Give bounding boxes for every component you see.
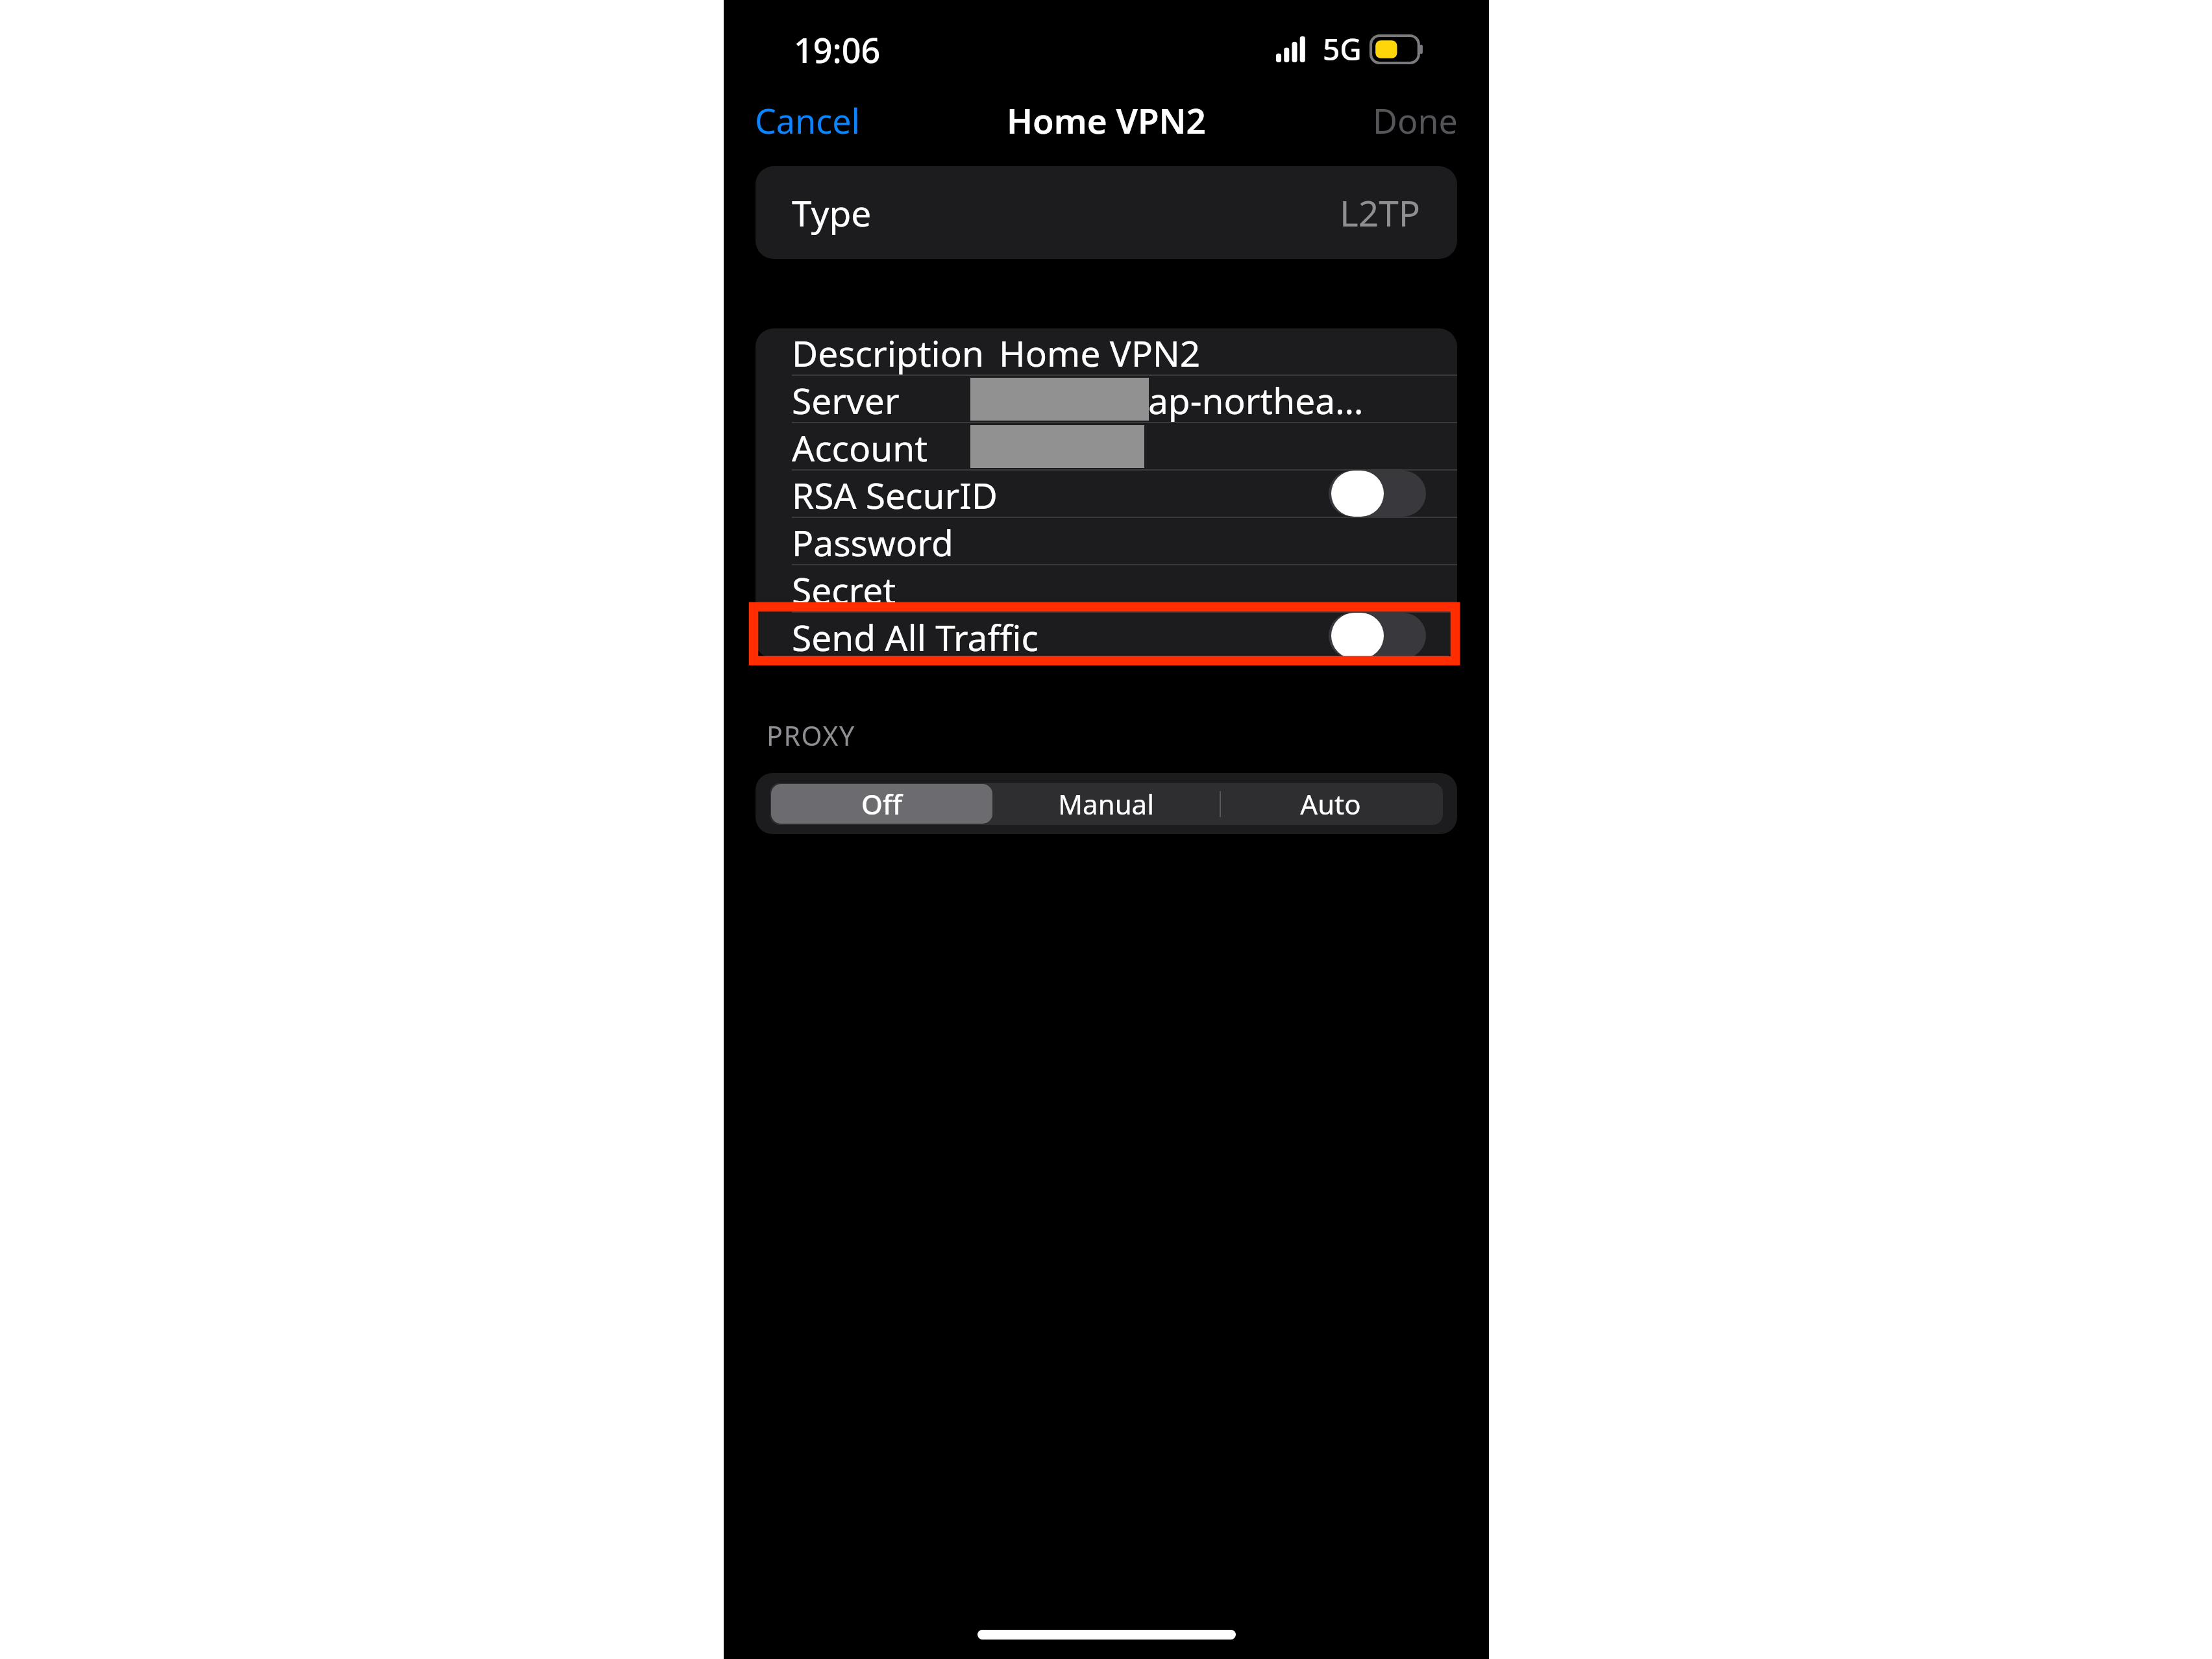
staticText: Send All Traffic bbox=[792, 613, 1038, 659]
staticText: Account bbox=[792, 423, 928, 469]
button[interactable]: Off bbox=[771, 784, 992, 824]
button[interactable]: Server bbox=[756, 376, 1457, 422]
staticText: L2TP bbox=[1340, 188, 1421, 237]
button[interactable]: Password bbox=[756, 518, 1457, 564]
button[interactable]: RSA SecurID toggle, off bbox=[1329, 471, 1426, 517]
staticText: Description bbox=[792, 328, 984, 375]
button[interactable]: Type bbox=[756, 166, 1457, 259]
staticText: Cancel bbox=[755, 97, 860, 143]
staticText: Password bbox=[792, 518, 953, 564]
staticText: Done bbox=[1373, 97, 1458, 143]
button[interactable]: Send All Traffic toggle, off bbox=[1329, 613, 1426, 659]
button[interactable]: Cancel bbox=[724, 88, 891, 153]
staticText: ap-northea… bbox=[1148, 376, 1364, 422]
staticText: Auto bbox=[1300, 785, 1361, 822]
button[interactable]: Auto bbox=[1220, 784, 1442, 824]
staticText: Off bbox=[861, 785, 902, 822]
staticText: Home VPN2 bbox=[1007, 97, 1206, 143]
button[interactable]: Secret bbox=[756, 565, 1457, 611]
button[interactable]: Account bbox=[756, 423, 1457, 469]
staticText: Manual bbox=[1058, 785, 1154, 822]
staticText: 5G bbox=[1323, 29, 1362, 69]
staticText: Server bbox=[792, 376, 900, 422]
button[interactable]: Send All Traffic bbox=[756, 613, 1457, 659]
staticText: Type bbox=[792, 188, 872, 237]
staticText: 19:06 bbox=[794, 27, 881, 73]
staticText: Secret bbox=[792, 565, 896, 611]
staticText: Home VPN2 bbox=[999, 328, 1201, 375]
button[interactable]: Done bbox=[1342, 88, 1489, 153]
staticText: PROXY bbox=[767, 717, 855, 754]
button[interactable]: Description bbox=[756, 328, 1457, 375]
button[interactable]: Manual bbox=[995, 784, 1217, 824]
staticText: RSA SecurID bbox=[792, 471, 998, 517]
button[interactable]: RSA SecurID bbox=[756, 471, 1457, 517]
